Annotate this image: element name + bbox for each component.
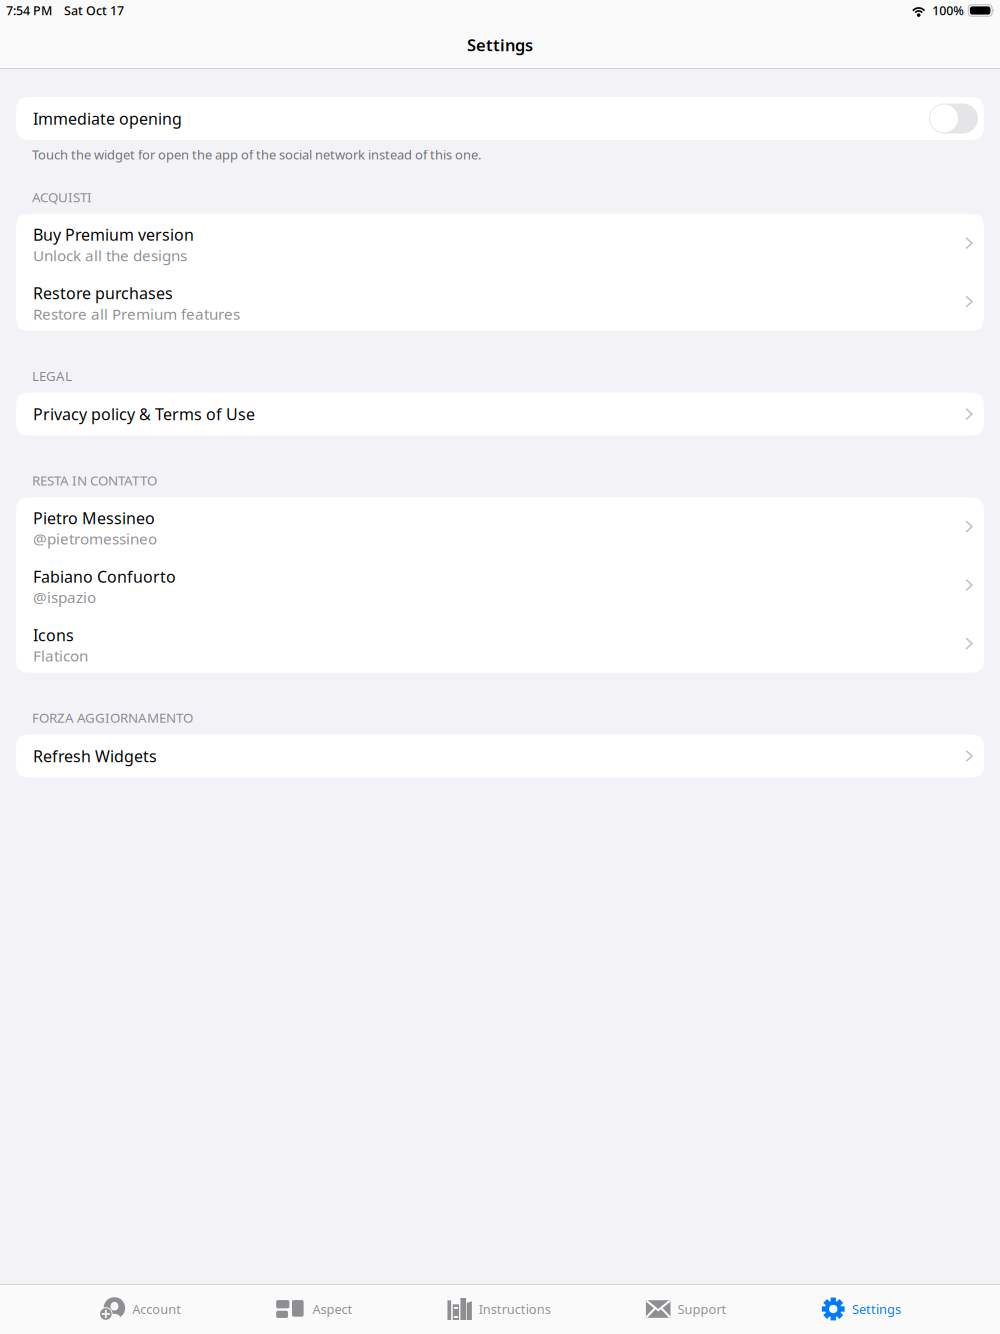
staticText: Icons <box>33 624 74 645</box>
staticText: Flaticon <box>33 646 88 666</box>
staticText: Pietro Messineo <box>33 507 155 528</box>
button[interactable]: Aspect <box>276 1284 352 1333</box>
staticText: ACQUISTI <box>32 188 92 206</box>
staticText: Aspect <box>312 1300 352 1317</box>
staticText: LEGAL <box>32 367 72 385</box>
staticText: Unlock all the designs <box>33 245 187 265</box>
staticText: Restore purchases <box>33 282 173 304</box>
staticText: RESTA IN CONTATTO <box>32 472 157 489</box>
staticText: Buy Premium version <box>33 224 194 245</box>
button[interactable]: Instructions <box>447 1284 551 1333</box>
staticText: Refresh Widgets <box>33 745 157 767</box>
button[interactable]: Account <box>99 1284 181 1333</box>
button[interactable]: Refresh Widgets <box>16 734 984 777</box>
button[interactable]: Immediate opening <box>929 103 984 133</box>
staticText: Touch the widget for open the app of the… <box>32 146 481 163</box>
staticText: 100% <box>932 2 964 19</box>
staticText: Settings <box>852 1300 901 1317</box>
button[interactable]: Restore purchases <box>16 272 984 331</box>
button[interactable]: Icons <box>16 614 984 673</box>
staticText: Immediate opening <box>33 108 182 129</box>
staticText: @ispazio <box>33 587 96 607</box>
staticText: 7:54 PM <box>6 2 52 19</box>
button[interactable]: Settings <box>821 1284 901 1333</box>
staticText: Sat Oct 17 <box>64 2 124 19</box>
button[interactable]: Buy Premium version <box>16 214 984 272</box>
staticText: Restore all Premium features <box>33 304 240 324</box>
staticText: Settings <box>467 34 533 56</box>
staticText: FORZA AGGIORNAMENTO <box>32 709 193 726</box>
staticText: Fabiano Confuorto <box>33 566 176 587</box>
staticText: Support <box>677 1300 726 1317</box>
staticText: Account <box>132 1300 181 1317</box>
button[interactable]: Pietro Messineo <box>16 497 984 556</box>
staticText: Privacy policy & Terms of Use <box>33 403 255 425</box>
button[interactable]: Support <box>646 1284 726 1333</box>
button[interactable]: Fabiano Confuorto <box>16 556 984 614</box>
button[interactable]: Privacy policy & Terms of Use <box>16 393 984 436</box>
staticText: Instructions <box>479 1300 551 1317</box>
staticText: @pietromessineo <box>33 529 157 549</box>
